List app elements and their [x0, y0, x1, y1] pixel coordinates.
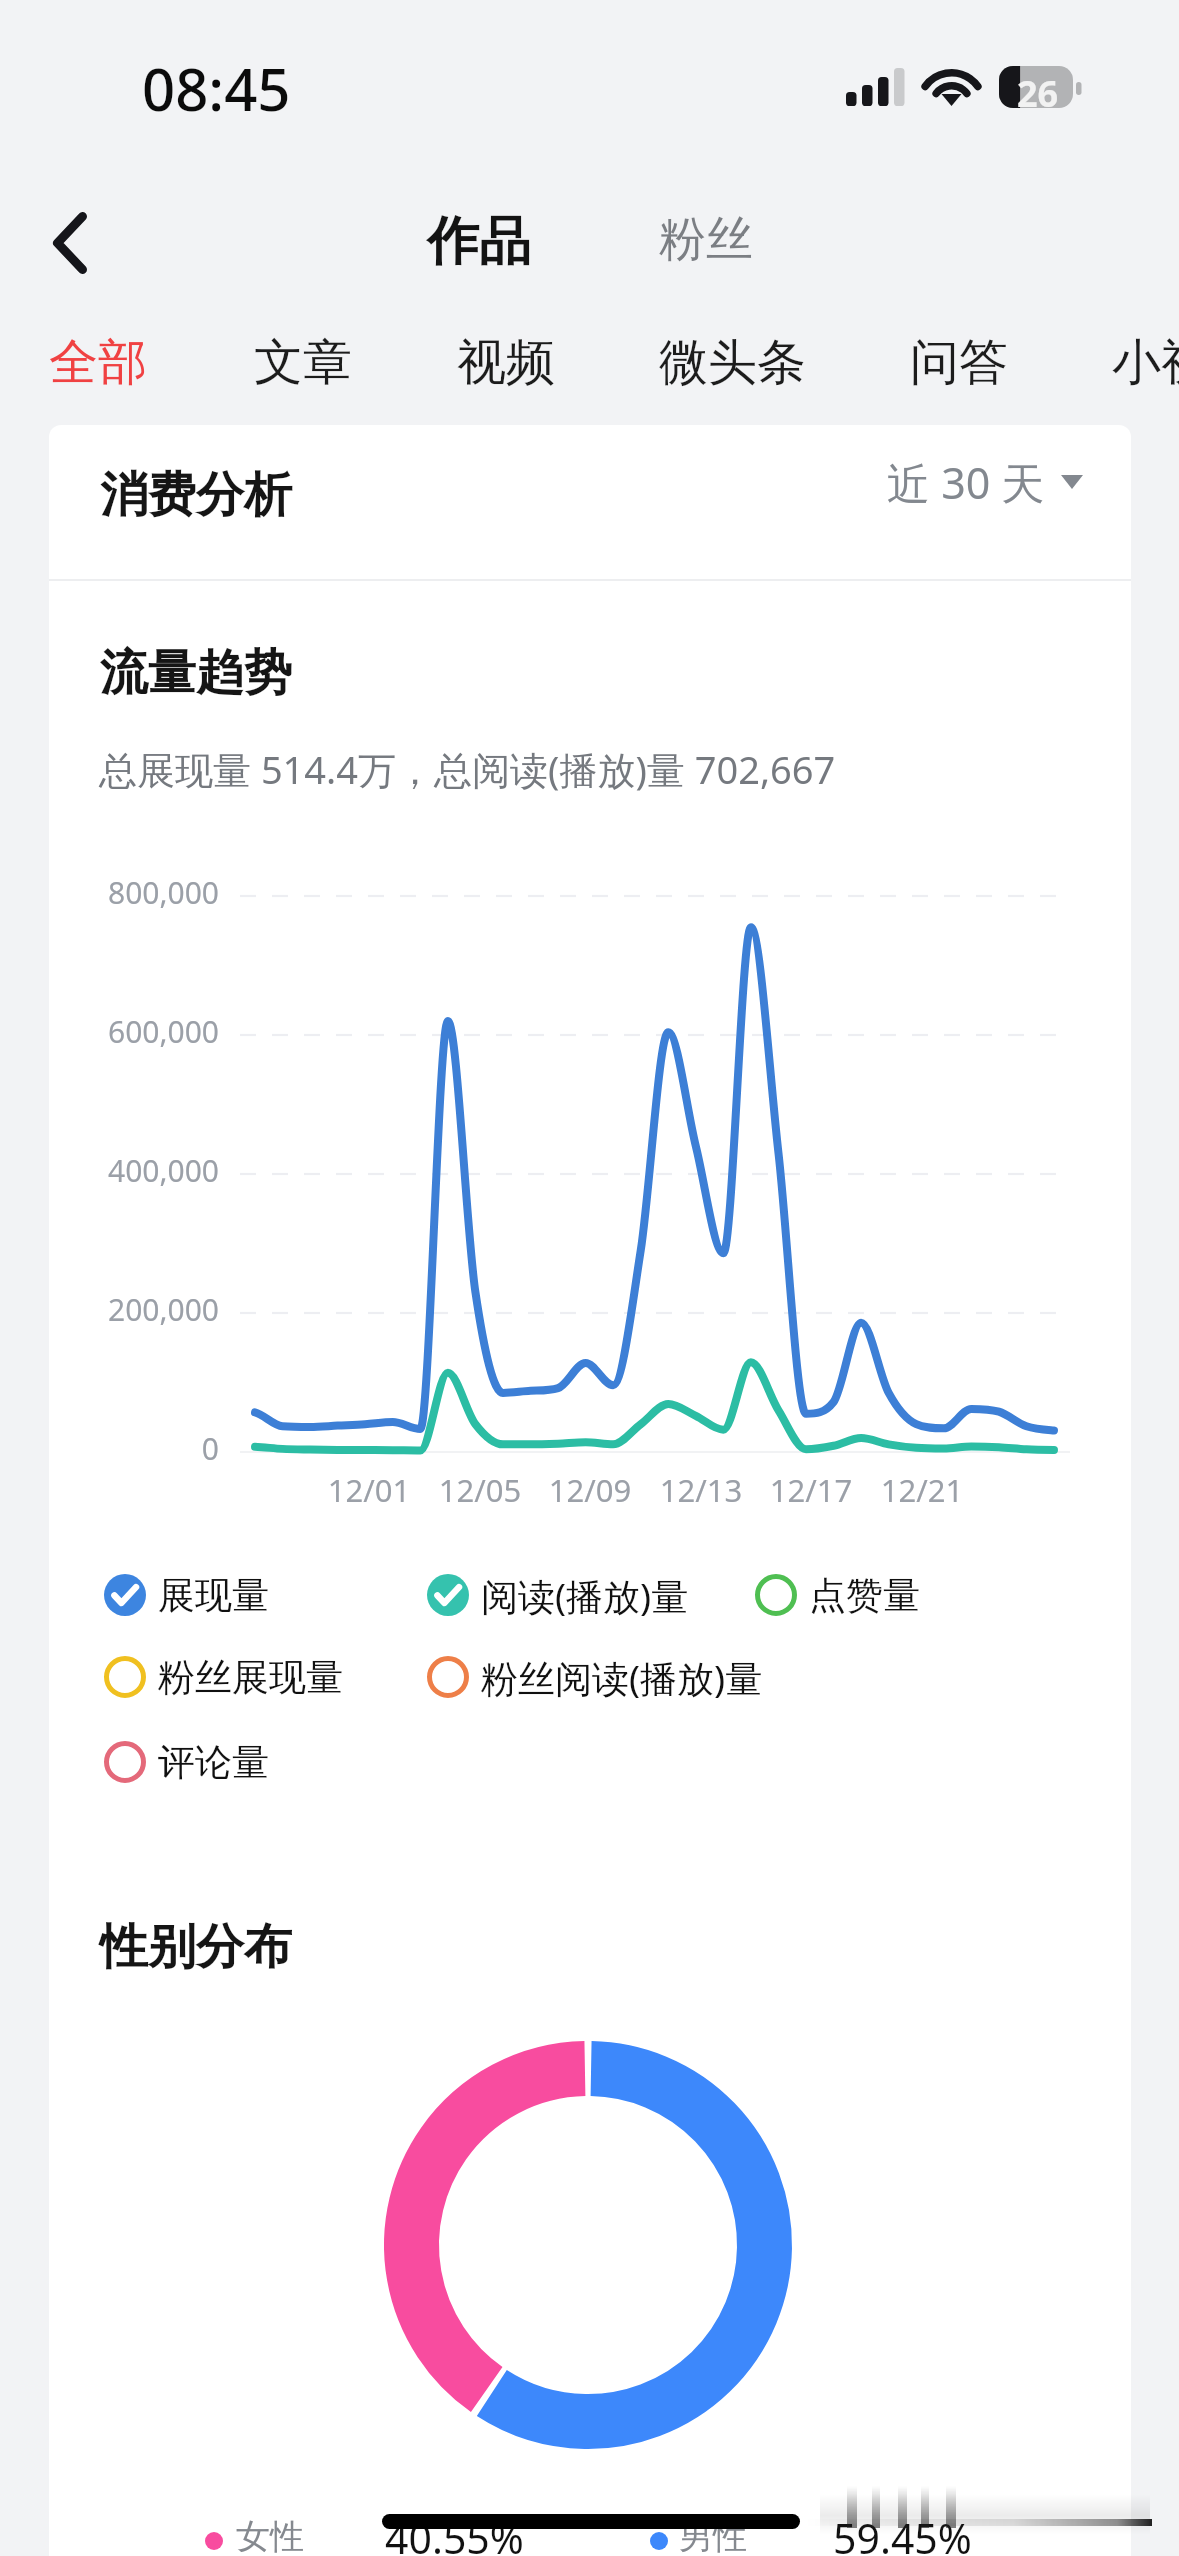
staticText: 阅读(播放)量 — [481, 1570, 689, 1621]
staticText: 作品 — [427, 209, 531, 275]
button[interactable]: 近 30 天 — [887, 442, 1083, 522]
button[interactable]: 点赞量 — [754, 1563, 920, 1627]
staticText: 总展现量 514.4万，总阅读(播放)量 702,667 — [99, 743, 836, 795]
staticText: 粉丝 — [659, 210, 753, 269]
staticText: 800,000 — [49, 872, 219, 913]
staticText: 性别分布 — [100, 1917, 292, 1977]
staticText: 评论量 — [158, 1739, 269, 1786]
staticText: 粉丝阅读(播放)量 — [481, 1652, 763, 1703]
staticText: 0 — [49, 1428, 219, 1469]
button[interactable]: 展现量 — [103, 1563, 269, 1627]
button[interactable]: Back — [20, 193, 120, 293]
staticText: 12/13 — [626, 1469, 776, 1511]
button[interactable]: 文章 — [254, 317, 352, 409]
staticText: 女性 — [236, 2515, 304, 2556]
button[interactable]: 小视频 — [1112, 317, 1179, 409]
button[interactable]: 阅读(播放)量 — [426, 1563, 689, 1627]
staticText: 点赞量 — [809, 1572, 920, 1619]
staticText: 08:45 — [142, 49, 291, 128]
button[interactable]: 问答 — [910, 317, 1008, 409]
button[interactable]: 视频 — [457, 317, 555, 409]
staticText: 12/09 — [515, 1469, 665, 1511]
staticText: 12/21 — [847, 1469, 997, 1511]
staticText: 200,000 — [49, 1289, 219, 1330]
staticText: 小视频 — [1112, 332, 1179, 394]
staticText: 40.55% — [385, 2510, 524, 2556]
staticText: 消费分析 — [100, 465, 292, 525]
button[interactable]: 粉丝阅读(播放)量 — [426, 1645, 763, 1709]
button[interactable]: 微头条 — [659, 317, 806, 409]
staticText: 近 30 天 — [887, 453, 1045, 512]
staticText: 12/01 — [294, 1469, 444, 1511]
button[interactable]: 作品 — [404, 194, 554, 290]
staticText: 全部 — [49, 332, 147, 394]
button[interactable]: 粉丝 — [638, 191, 774, 287]
button[interactable]: 全部 — [49, 317, 147, 409]
staticText: 600,000 — [49, 1011, 219, 1052]
staticText: 12/17 — [736, 1469, 886, 1511]
staticText: 400,000 — [49, 1150, 219, 1191]
staticText: 粉丝展现量 — [158, 1654, 343, 1701]
staticText: 26 — [1017, 69, 1059, 118]
staticText: 展现量 — [158, 1572, 269, 1619]
staticText: 微头条 — [659, 332, 806, 394]
staticText: 文章 — [254, 332, 352, 394]
staticText: 男性 — [679, 2515, 747, 2556]
staticText: 流量趋势 — [100, 643, 292, 703]
staticText: 视频 — [457, 332, 555, 394]
button[interactable]: 粉丝展现量 — [103, 1645, 343, 1709]
staticText: 59.45% — [833, 2510, 972, 2556]
staticText: 12/05 — [405, 1469, 555, 1511]
button[interactable]: 评论量 — [103, 1730, 269, 1794]
staticText: 问答 — [910, 332, 1008, 394]
